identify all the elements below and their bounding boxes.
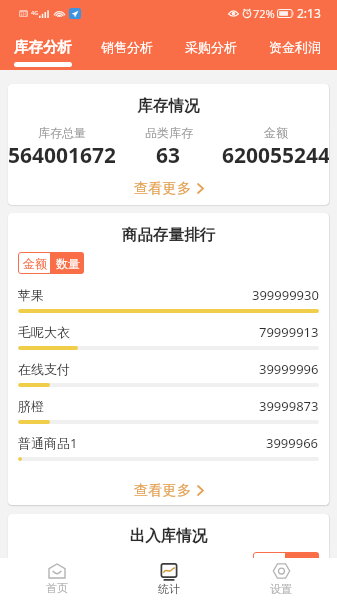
button[interactable]: 数量: [51, 252, 84, 274]
staticText: 库存总量: [38, 125, 86, 140]
staticText: 数量: [56, 256, 80, 271]
staticText: 库存分析: [14, 38, 72, 56]
button[interactable]: 查看更多: [8, 478, 329, 502]
staticText: HD: [20, 11, 27, 17]
button[interactable]: 库存分析: [0, 26, 85, 70]
staticText: 564001672: [8, 141, 115, 170]
staticText: 3999966: [266, 434, 319, 452]
staticText: 72%: [253, 6, 275, 21]
staticText: 620055244: [222, 141, 329, 170]
staticText: 首页: [46, 581, 68, 595]
button[interactable]: 金额: [18, 252, 51, 274]
button[interactable]: 查看更多: [8, 176, 329, 200]
staticText: 金额: [258, 556, 282, 571]
button[interactable]: 设置: [225, 558, 337, 600]
staticText: 苹果: [18, 287, 252, 303]
staticText: 普通商品1: [18, 434, 266, 452]
button[interactable]: 普通商品1: [8, 434, 329, 471]
staticText: 脐橙: [18, 398, 259, 414]
button[interactable]: 采购分析: [169, 26, 253, 70]
button[interactable]: 统计: [113, 558, 225, 600]
staticText: 金额: [23, 256, 47, 271]
staticText: 4G: [31, 9, 39, 16]
staticText: 采购分析: [185, 39, 237, 55]
staticText: 63: [156, 141, 181, 170]
staticText: 商品存量排行: [8, 225, 329, 245]
staticText: 品类库存: [145, 125, 193, 140]
staticText: 39999873: [259, 397, 319, 415]
staticText: 库存情况: [8, 96, 329, 116]
staticText: 查看更多: [134, 481, 192, 499]
button[interactable]: 数量: [286, 552, 319, 574]
staticText: 金额: [264, 125, 288, 140]
staticText: 在线支付: [18, 361, 259, 377]
button[interactable]: 毛呢大衣: [8, 323, 329, 360]
button[interactable]: 资金利润: [253, 26, 337, 70]
staticText: 2:13: [297, 5, 321, 21]
staticText: 出入库情况: [8, 526, 329, 546]
staticText: 查看更多: [134, 179, 192, 197]
staticText: 销售分析: [101, 39, 153, 55]
button[interactable]: 苹果: [8, 286, 329, 323]
button[interactable]: 脐橙: [8, 397, 329, 434]
staticText: 数量: [291, 556, 315, 571]
button[interactable]: 销售分析: [85, 26, 169, 70]
staticText: 399999930: [252, 286, 319, 304]
staticText: 统计: [158, 582, 180, 596]
button[interactable]: 金额: [253, 552, 286, 574]
staticText: 39999996: [259, 360, 319, 378]
staticText: 79999913: [259, 323, 319, 341]
staticText: 资金利润: [269, 39, 321, 55]
staticText: 毛呢大衣: [18, 324, 259, 340]
button[interactable]: 在线支付: [8, 360, 329, 397]
staticText: 设置: [270, 582, 292, 596]
button[interactable]: 首页: [0, 558, 113, 600]
